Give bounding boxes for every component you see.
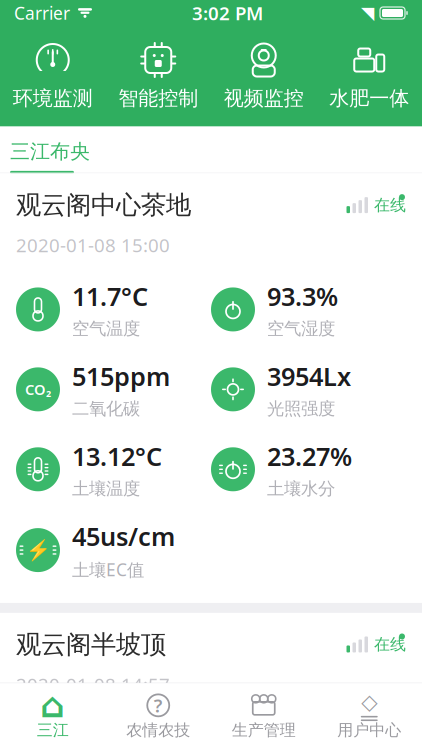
staticText: 3:02 PM [192, 1, 263, 25]
button[interactable]: 三江布央 [0, 125, 90, 174]
staticText: 二氧化碳 [72, 398, 140, 419]
staticText: Carrier [14, 1, 70, 24]
button[interactable]: 水肥一体 [316, 34, 422, 117]
button[interactable]: 环境监测 [0, 34, 105, 117]
staticText: 观云阁半坡顶 [16, 629, 166, 660]
staticText: 土壤温度 [72, 478, 140, 499]
staticText: 土壤水分 [267, 478, 335, 499]
staticText: ⚡ [25, 539, 50, 562]
staticText: CO₂ [25, 380, 51, 399]
staticText: 13.12°C [72, 439, 162, 473]
button[interactable]: 智能控制 [105, 34, 211, 117]
staticText: 生产管理 [232, 720, 296, 740]
staticText: 22.65% [267, 719, 352, 750]
staticText: ◇ [361, 690, 377, 714]
staticText: 12.51°C [72, 719, 162, 750]
staticText: 3954Lx [267, 359, 351, 393]
staticText: 三江 [37, 720, 69, 740]
staticText: ⌂ [40, 686, 65, 725]
staticText: 三江布央 [10, 139, 90, 164]
staticText: 2020-01-08 14:57 [16, 672, 170, 697]
staticText: ◥ [361, 3, 374, 23]
staticText: 23.27% [267, 439, 352, 473]
staticText: 45us/cm [72, 519, 175, 553]
staticText: 视频监控 [224, 86, 304, 111]
staticText: 观云阁中心茶地 [16, 190, 191, 221]
staticText: 2020-01-08 15:00 [16, 233, 170, 257]
staticText: 空气温度 [72, 318, 140, 339]
staticText: 空气湿度 [267, 318, 335, 339]
staticText: 光照强度 [267, 398, 335, 419]
staticText: 在线 [374, 195, 406, 215]
staticText: 环境监测 [13, 86, 93, 111]
staticText: 水肥一体 [329, 86, 409, 111]
button[interactable]: 生产管理 [211, 687, 316, 746]
button[interactable]: ◇ [316, 687, 422, 746]
button[interactable]: ⌂ [0, 687, 105, 746]
staticText: ? [154, 693, 163, 718]
button[interactable]: 视频监控 [211, 34, 316, 117]
button[interactable]: 观云阁半坡顶 [0, 613, 422, 660]
staticText: 用户中心 [337, 720, 401, 740]
staticText: 智能控制 [118, 86, 198, 111]
staticText: 土壤EC值 [72, 558, 144, 581]
staticText: 农情农技 [126, 720, 190, 740]
staticText: 在线 [374, 635, 406, 654]
button[interactable]: 观云阁中心茶地 [0, 174, 422, 221]
staticText: 11.7°C [72, 279, 148, 313]
staticText: 93.3% [267, 279, 338, 313]
button[interactable]: ? [105, 687, 211, 746]
staticText: 515ppm [72, 359, 170, 393]
